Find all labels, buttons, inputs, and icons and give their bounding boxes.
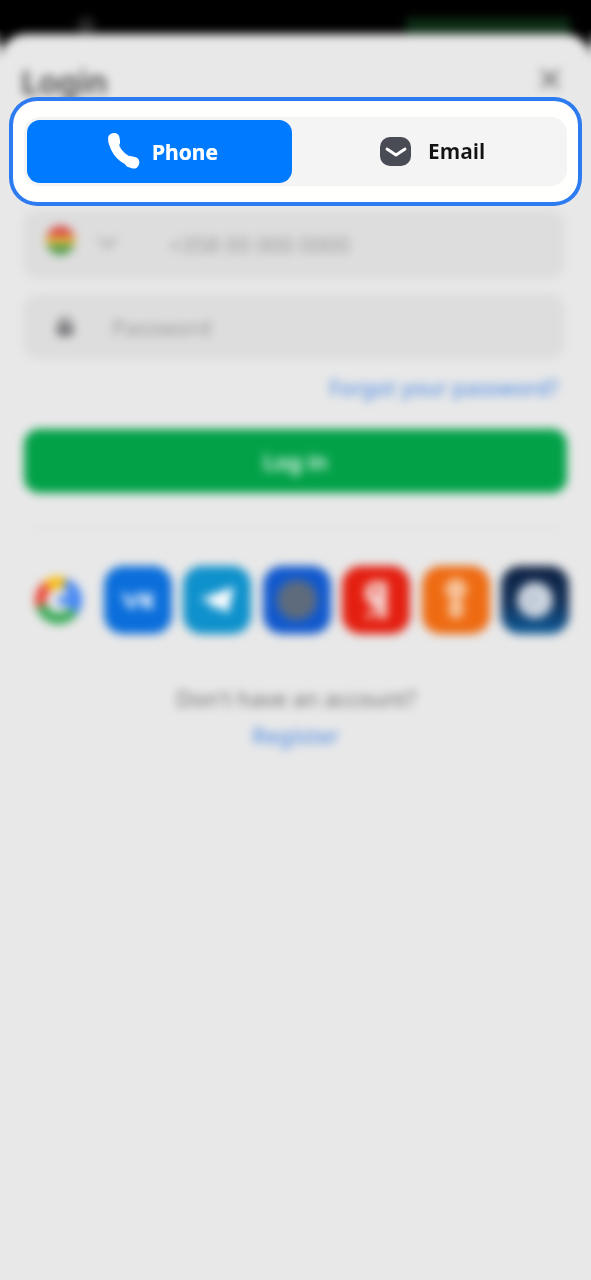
button[interactable]: Sign in with Yandex bbox=[342, 566, 410, 634]
staticText: Log in bbox=[263, 446, 328, 476]
button[interactable]: Sign in with Safari bbox=[501, 566, 569, 634]
button[interactable]: Email bbox=[295, 117, 567, 186]
staticText: +358 00 000 0000 bbox=[169, 229, 350, 259]
button[interactable]: Sign in with Mail bbox=[263, 566, 331, 634]
button[interactable]: Sign in with Google bbox=[24, 566, 92, 634]
button[interactable]: Sign in with Telegram bbox=[183, 566, 251, 634]
button[interactable]: Password bbox=[23, 294, 565, 359]
button[interactable]: Forgot your password? bbox=[329, 374, 559, 403]
staticText: Register bbox=[252, 720, 340, 750]
button[interactable]: +358 00 000 0000 bbox=[23, 210, 565, 279]
button[interactable]: Close bbox=[533, 62, 567, 96]
button[interactable]: Register bbox=[252, 720, 340, 750]
button[interactable]: Sign in with Odnoklassniki bbox=[422, 566, 490, 634]
staticText: Login bbox=[21, 60, 108, 104]
staticText: Phone bbox=[152, 138, 219, 167]
staticText: Password bbox=[112, 312, 212, 342]
button[interactable]: Log in bbox=[24, 429, 567, 493]
staticText: Don't have an account? bbox=[176, 683, 416, 713]
button[interactable]: Phone bbox=[27, 120, 292, 183]
staticText: Forgot your password? bbox=[329, 374, 559, 403]
staticText: Email bbox=[428, 137, 486, 166]
button[interactable]: Sign in with VK bbox=[104, 566, 172, 634]
